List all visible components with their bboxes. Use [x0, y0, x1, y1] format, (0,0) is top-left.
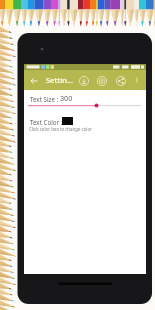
staticText: Text Size : — [30, 95, 60, 103]
button[interactable]: Download — [78, 75, 90, 87]
staticText: Text Color : — [30, 118, 63, 126]
button[interactable]: Text size slider — [26, 100, 144, 111]
staticText: 300 — [60, 93, 73, 103]
staticText: Settin... — [46, 75, 74, 85]
button[interactable]: More options — [131, 74, 142, 85]
button[interactable]: Share — [115, 75, 127, 87]
button[interactable]: Back — [28, 75, 40, 87]
button[interactable]: Camera — [96, 75, 108, 87]
staticText: Click color box to change color — [29, 126, 92, 132]
